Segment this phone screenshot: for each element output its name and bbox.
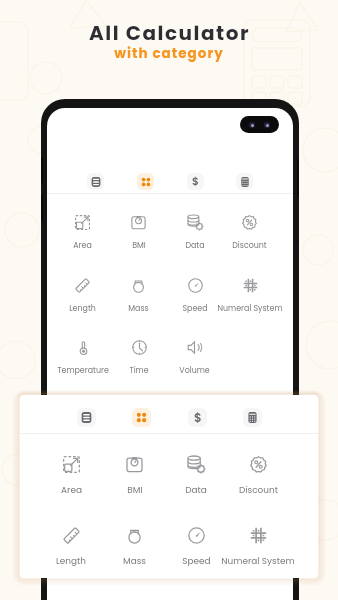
staticText: BMI: [127, 484, 143, 496]
button[interactable]: Length: [47, 278, 123, 314]
staticText: Mass: [123, 555, 146, 567]
button[interactable]: Area: [47, 215, 123, 251]
staticText: Temperature: [57, 365, 109, 376]
staticText: Volume: [179, 365, 210, 376]
button[interactable]: All units list: [77, 408, 96, 427]
button[interactable]: Speed: [154, 278, 235, 314]
button[interactable]: All units list: [87, 173, 104, 190]
button[interactable]: Currency: [187, 173, 204, 190]
staticText: with category: [114, 44, 224, 63]
staticText: Length: [69, 303, 96, 314]
button[interactable]: BMI: [98, 215, 179, 251]
button[interactable]: Calculator: [243, 408, 262, 427]
button[interactable]: Temperature: [47, 340, 123, 376]
button[interactable]: Data: [154, 215, 235, 251]
staticText: Area: [73, 240, 92, 251]
staticText: BMI: [132, 240, 146, 251]
button[interactable]: Categories: [137, 173, 154, 190]
staticText: Speed: [182, 303, 208, 314]
staticText: Discount: [239, 484, 278, 496]
button[interactable]: Numeral System: [213, 527, 303, 567]
button[interactable]: Volume: [154, 340, 235, 376]
button[interactable]: Length: [26, 527, 116, 567]
button[interactable]: Data: [151, 456, 241, 496]
button[interactable]: Numeral System: [209, 278, 290, 314]
button[interactable]: Discount: [209, 215, 290, 251]
button[interactable]: Speed: [151, 527, 241, 567]
staticText: $: [194, 410, 202, 426]
button[interactable]: Mass: [98, 278, 179, 314]
staticText: Data: [185, 240, 205, 251]
staticText: Data: [185, 484, 207, 496]
button[interactable]: Categories: [132, 408, 151, 427]
staticText: Discount: [232, 240, 267, 251]
staticText: Numeral System: [217, 303, 283, 314]
staticText: Numeral System: [221, 555, 295, 567]
button[interactable]: Area: [26, 456, 116, 496]
staticText: Time: [129, 365, 149, 376]
button[interactable]: Time: [98, 340, 179, 376]
staticText: All Calculator: [89, 19, 250, 47]
staticText: Speed: [182, 555, 211, 567]
button[interactable]: Calculator: [236, 173, 253, 190]
button[interactable]: Discount: [213, 456, 303, 496]
button[interactable]: Mass: [89, 527, 179, 567]
button[interactable]: Currency: [188, 408, 207, 427]
staticText: Length: [56, 555, 86, 567]
button[interactable]: BMI: [89, 456, 179, 496]
staticText: Mass: [128, 303, 149, 314]
staticText: $: [192, 174, 199, 189]
staticText: Area: [61, 484, 82, 496]
